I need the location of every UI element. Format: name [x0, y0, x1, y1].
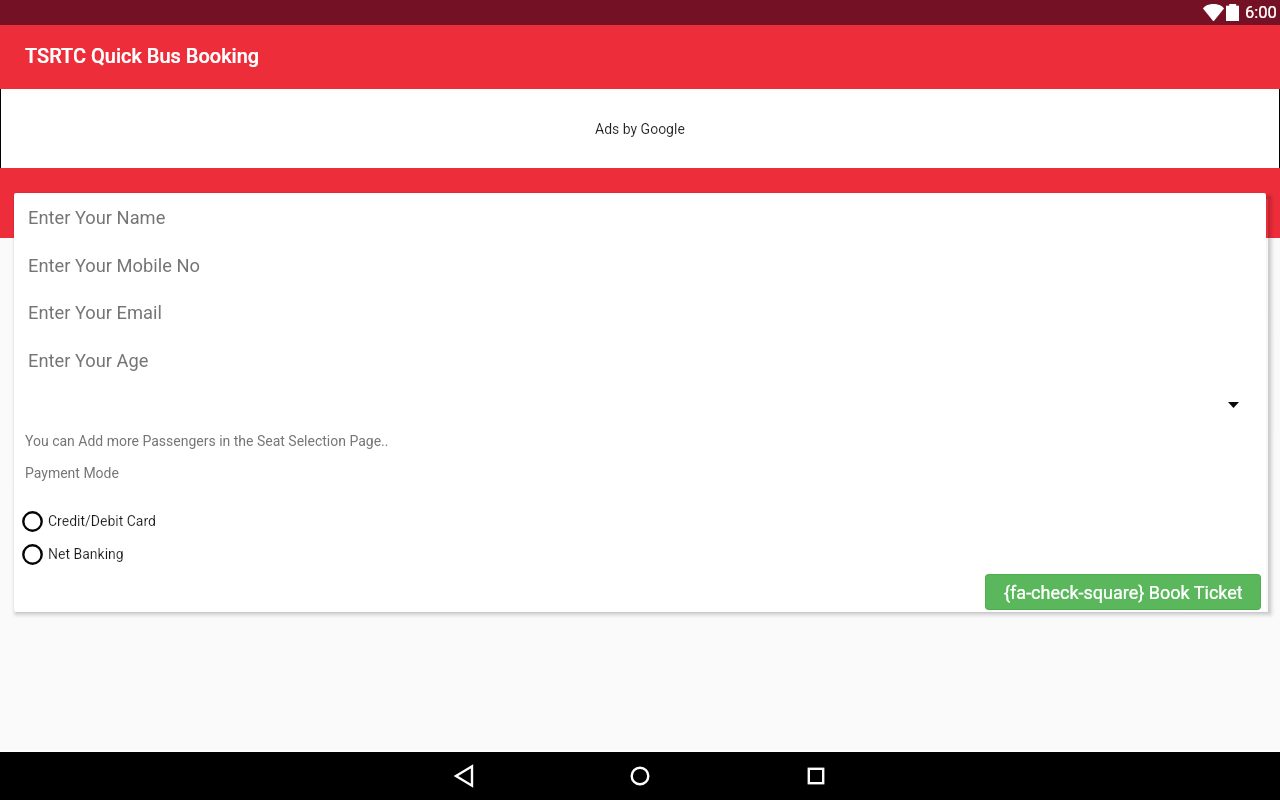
button[interactable]: Enter Your Name: [14, 194, 1266, 241]
button[interactable]: Home: [616, 752, 664, 800]
button[interactable]: Ads by Google: [0, 89, 1280, 168]
staticText: TSRTC Quick Bus Booking: [25, 44, 260, 67]
button[interactable]: {fa-check-square} Book Ticket: [986, 575, 1260, 609]
button[interactable]: Enter Your Email: [14, 289, 1266, 336]
staticText: Enter Your Email: [28, 302, 162, 323]
staticText: Enter Your Age: [28, 350, 149, 371]
staticText: {fa-check-square} Book Ticket: [1004, 582, 1243, 603]
button[interactable]: Back: [440, 752, 488, 800]
staticText: 6:00: [1245, 3, 1277, 22]
staticText: Enter Your Name: [28, 207, 166, 228]
button[interactable]: Number of passengers: [1210, 390, 1256, 420]
staticText: Net Banking: [48, 546, 124, 562]
staticText: Enter Your Mobile No: [28, 255, 200, 276]
button[interactable]: Net Banking: [14, 539, 1266, 569]
button[interactable]: Recent apps: [792, 752, 840, 800]
button[interactable]: Enter Your Age: [14, 337, 1266, 384]
staticText: You can Add more Passengers in the Seat …: [25, 433, 389, 449]
staticText: Credit/Debit Card: [48, 513, 156, 529]
staticText: Payment Mode: [25, 465, 119, 481]
button[interactable]: Enter Your Mobile No: [14, 242, 1266, 289]
button[interactable]: Credit/Debit Card: [14, 506, 1266, 536]
staticText: Ads by Google: [595, 121, 685, 137]
